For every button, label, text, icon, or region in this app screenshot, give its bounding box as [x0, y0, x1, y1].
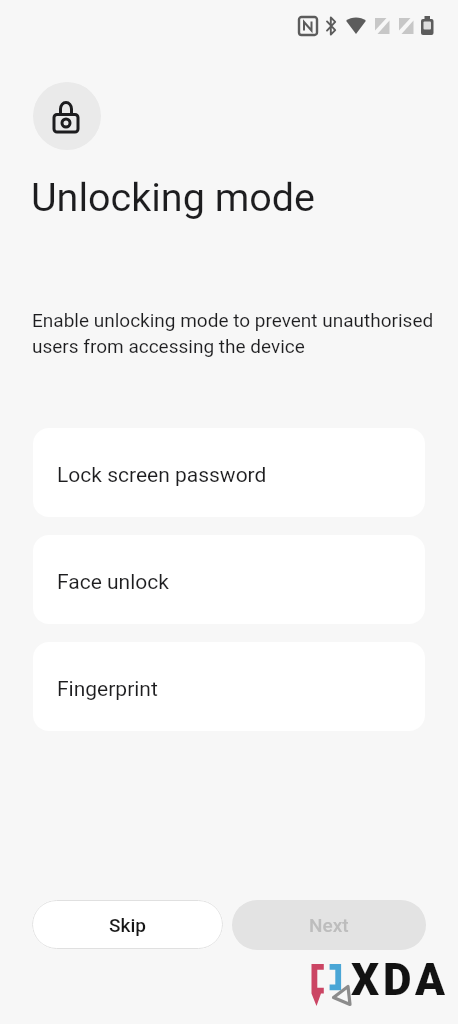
button[interactable]: Face unlock: [33, 535, 425, 624]
button[interactable]: Next: [232, 900, 426, 950]
button[interactable]: Fingerprint: [33, 642, 425, 731]
staticText: Enable unlocking mode to prevent unautho…: [32, 309, 434, 357]
staticText: Fingerprint: [57, 677, 158, 702]
button[interactable]: Skip: [32, 900, 223, 949]
staticText: XDA: [351, 954, 450, 1006]
staticText: Skip: [109, 914, 146, 936]
staticText: Unlocking mode: [31, 174, 316, 220]
button[interactable]: Lock screen password: [33, 428, 425, 517]
staticText: Next: [309, 914, 349, 936]
staticText: Lock screen password: [57, 463, 267, 488]
staticText: Face unlock: [57, 570, 169, 595]
